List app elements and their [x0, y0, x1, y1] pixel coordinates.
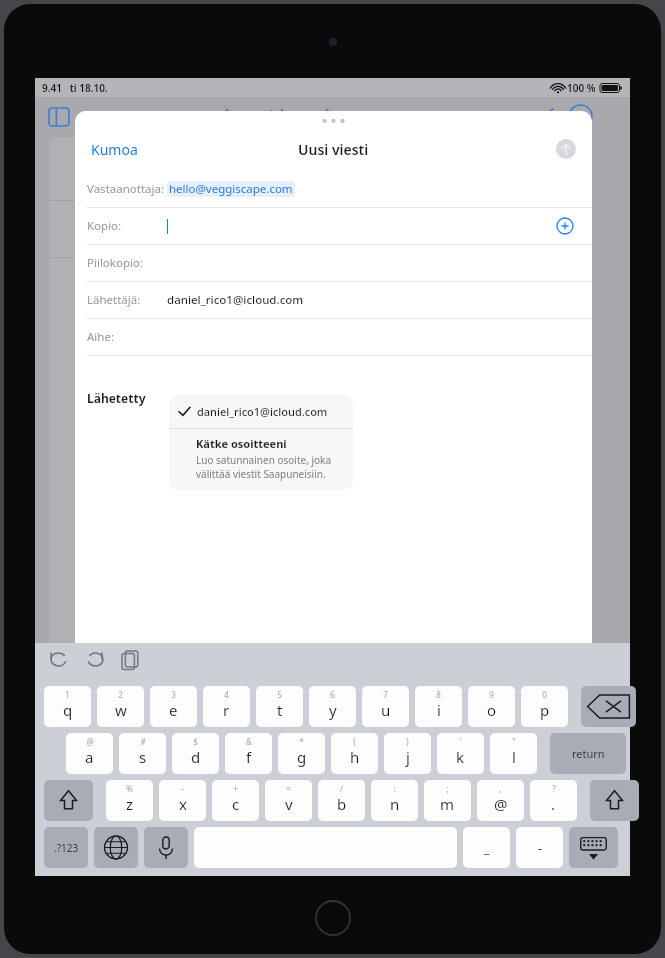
button[interactable]: 8 — [415, 686, 462, 727]
staticText: * — [299, 736, 304, 747]
button[interactable]: : — [371, 780, 418, 821]
staticText: @ — [494, 794, 508, 814]
button[interactable]: Sidebar — [48, 106, 70, 128]
button[interactable]: 3 — [150, 686, 197, 727]
button[interactable]: Backspace — [581, 686, 636, 727]
button[interactable]: daniel_rico1@icloud.com — [169, 395, 353, 428]
staticText: 6 — [330, 689, 335, 700]
button[interactable]: 0 — [521, 686, 568, 727]
button[interactable]: 6 — [309, 686, 356, 727]
button[interactable]: Lähettäjä: — [75, 282, 592, 318]
staticText: q — [63, 700, 73, 720]
button[interactable]: ) — [384, 733, 431, 774]
staticText: 5 — [277, 689, 282, 700]
button[interactable]: @ — [66, 733, 113, 774]
staticText: 4 — [224, 689, 229, 700]
button[interactable]: Kätke osoitteeni — [169, 429, 353, 481]
button[interactable]: More — [568, 104, 593, 129]
staticText: ' — [460, 736, 462, 747]
button[interactable]: % — [106, 780, 153, 821]
button[interactable]: Add contact — [556, 217, 574, 235]
button[interactable]: Action 1 — [263, 105, 287, 129]
staticText: # — [140, 736, 146, 747]
button[interactable]: $ — [172, 733, 219, 774]
staticText: Uusi viesti — [298, 140, 369, 159]
button[interactable]: 5 — [256, 686, 303, 727]
button[interactable]: Aihe: — [75, 319, 592, 355]
button[interactable]: Paste — [121, 650, 141, 670]
staticText: c — [232, 794, 240, 814]
staticText: @ — [86, 736, 94, 747]
staticText: ) — [406, 736, 409, 747]
button[interactable]: ( — [331, 733, 378, 774]
button[interactable]: .?123 — [44, 827, 88, 868]
button[interactable]: Redo — [85, 650, 105, 670]
staticText: h — [350, 747, 360, 767]
button[interactable]: Globe — [94, 827, 138, 868]
staticText: : — [393, 783, 396, 794]
button[interactable]: 7 — [362, 686, 409, 727]
button[interactable]: Home — [315, 900, 351, 936]
button[interactable]: / — [318, 780, 365, 821]
staticText: v — [285, 794, 293, 814]
button[interactable]: - — [159, 780, 206, 821]
button[interactable]: - — [516, 827, 563, 868]
button[interactable]: Kumoa — [87, 136, 142, 163]
staticText: ( — [353, 736, 356, 747]
staticText: . — [551, 794, 556, 814]
staticText: 2 — [118, 689, 123, 700]
button[interactable]: Shift — [44, 780, 93, 821]
staticText: Vastaanottaja: — [87, 181, 165, 197]
button[interactable]: Hide keyboard — [569, 827, 618, 868]
staticText: u — [381, 700, 391, 720]
staticText: g — [297, 747, 307, 767]
staticText: r — [223, 700, 230, 720]
staticText: 8 — [436, 689, 441, 700]
button[interactable]: Kopio: — [75, 208, 592, 244]
button[interactable]: 9 — [468, 686, 515, 727]
staticText: 9.41 ti 18.10. — [42, 81, 108, 95]
button[interactable]: Action 3 — [357, 105, 381, 129]
staticText: Lähetetty — [87, 390, 146, 406]
staticText: hello@veggiscape.com — [169, 181, 293, 197]
staticText: Kumoa — [91, 140, 138, 159]
button[interactable]: ? — [530, 780, 577, 821]
button[interactable]: Compose — [532, 105, 556, 129]
button[interactable]: Dictate — [144, 827, 188, 868]
button[interactable]: & — [225, 733, 272, 774]
staticText: ? — [552, 783, 556, 794]
button[interactable]: Send — [556, 139, 576, 159]
button[interactable]: , — [477, 780, 524, 821]
button[interactable]: 1 — [44, 686, 91, 727]
button[interactable]: Piilokopio: — [75, 245, 592, 281]
staticText: " — [512, 736, 516, 747]
button[interactable]: Action 0 — [215, 105, 239, 129]
staticText: % — [126, 783, 133, 794]
staticText: b — [337, 794, 347, 814]
button[interactable]: Action 2 — [315, 105, 339, 129]
staticText: a — [85, 747, 94, 767]
button[interactable]: # — [119, 733, 166, 774]
button[interactable]: Action 4 — [403, 105, 427, 129]
staticText: return — [572, 746, 605, 761]
button[interactable]: * — [278, 733, 325, 774]
button[interactable]: ; — [424, 780, 471, 821]
button[interactable]: Vastaanottaja: — [75, 171, 592, 207]
staticText: d — [191, 747, 201, 767]
button[interactable]: Undo — [49, 650, 69, 670]
button[interactable]: 2 — [97, 686, 144, 727]
button[interactable]: + — [212, 780, 259, 821]
button[interactable]: = — [265, 780, 312, 821]
staticText: 0 — [542, 689, 547, 700]
staticText: välittää viestit Saapuneisiin. — [196, 467, 326, 481]
button[interactable]: 4 — [203, 686, 250, 727]
staticText: 7 — [383, 689, 388, 700]
staticText: ; — [446, 783, 449, 794]
button[interactable]: " — [490, 733, 537, 774]
button[interactable]: Shift right — [590, 780, 639, 821]
button[interactable]: return — [550, 733, 626, 774]
button[interactable]: ' — [437, 733, 484, 774]
button[interactable]: _ — [463, 827, 510, 868]
staticText: - — [181, 783, 184, 794]
